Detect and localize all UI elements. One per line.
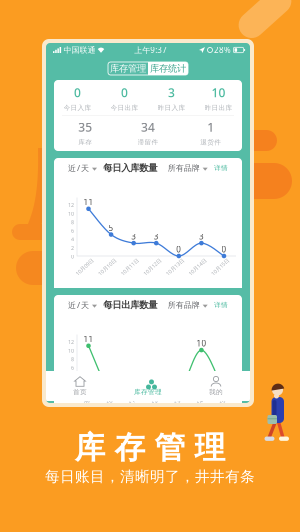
staticText: 10月11日 xyxy=(119,263,141,271)
button[interactable]: 我的 xyxy=(182,371,250,401)
staticText: 库存管理 xyxy=(110,63,146,74)
staticText: 0 xyxy=(176,244,181,255)
staticText: 上午9:37 xyxy=(134,45,167,55)
staticText: 10月12日 xyxy=(141,263,163,271)
button[interactable]: 库存管理 xyxy=(114,371,182,401)
staticText: 10月14日 xyxy=(186,400,208,408)
staticText: 库存管理 xyxy=(134,388,162,396)
staticText: 0 xyxy=(221,244,226,255)
staticText: 10 xyxy=(68,210,74,217)
staticText: 今日出库 xyxy=(110,104,138,112)
staticText: 12 xyxy=(68,338,74,346)
staticText: 6 xyxy=(71,227,74,234)
staticText: 10月12日 xyxy=(141,400,163,408)
staticText: 近7天 xyxy=(68,163,89,173)
staticText: 0 xyxy=(74,85,81,100)
staticText: 0 xyxy=(71,253,74,260)
staticText: 0 xyxy=(71,390,74,397)
staticText: 10月09日 xyxy=(73,400,95,408)
staticText: 3 xyxy=(199,231,204,242)
staticText: 3 xyxy=(154,231,159,242)
staticText: 3 xyxy=(131,231,136,242)
staticText: 34 xyxy=(141,119,155,135)
staticText: 库存 xyxy=(78,138,92,146)
staticText: 库 存 管 理 xyxy=(74,429,225,467)
button[interactable]: 首页 xyxy=(46,371,114,401)
staticText: 退货件 xyxy=(200,138,221,146)
staticText: 库存统计 xyxy=(150,63,186,74)
staticText: 10月13日 xyxy=(164,263,186,271)
staticText: 12 xyxy=(68,201,74,209)
staticText: 11 xyxy=(83,197,93,207)
staticText: 2 xyxy=(71,381,74,388)
staticText: 10 xyxy=(211,85,225,100)
staticText: 10月10日 xyxy=(96,263,118,271)
staticText: 每日出库数量 xyxy=(103,299,157,311)
staticText: 详情 xyxy=(214,301,228,309)
staticText: 我的 xyxy=(209,388,223,396)
button[interactable]: 库存管理 xyxy=(108,62,148,75)
staticText: 10月14日 xyxy=(186,263,208,271)
staticText: 10月09日 xyxy=(73,263,95,271)
staticText: 10月15日 xyxy=(209,263,231,271)
staticText: 滞留件 xyxy=(137,138,158,146)
staticText: 0 xyxy=(154,381,159,392)
staticText: 10月13日 xyxy=(164,400,186,408)
staticText: 3 xyxy=(168,85,175,100)
staticText: 中国联通 xyxy=(61,45,95,55)
staticText: 昨日入库 xyxy=(157,104,185,112)
staticText: 10月10日 xyxy=(96,400,118,408)
staticText: 每日入库数量 xyxy=(103,162,157,174)
staticText: 昨日出库 xyxy=(204,104,232,112)
staticText: 5 xyxy=(109,222,114,233)
staticText: 6 xyxy=(71,364,74,371)
staticText: 10月15日 xyxy=(209,400,231,408)
staticText: 8 xyxy=(71,356,74,363)
staticText: 8 xyxy=(71,219,74,226)
staticText: 4 xyxy=(71,236,74,243)
staticText: 今日入库 xyxy=(63,104,91,112)
staticText: 1 xyxy=(207,119,214,135)
staticText: 2 xyxy=(71,244,74,251)
staticText: 0 xyxy=(121,85,128,100)
staticText: 每日账目，清晰明了，井井有条 xyxy=(45,468,255,486)
staticText: 所有品牌 xyxy=(168,163,200,173)
button[interactable]: 库存统计 xyxy=(148,62,188,75)
staticText: 11 xyxy=(83,334,93,344)
staticText: 10 xyxy=(68,347,74,354)
staticText: 近7天 xyxy=(68,300,89,310)
staticText: 10月11日 xyxy=(119,400,141,408)
staticText: 0 xyxy=(131,381,136,392)
staticText: 首页 xyxy=(73,388,87,396)
staticText: 10 xyxy=(196,338,206,349)
staticText: 所有品牌 xyxy=(168,300,200,310)
staticText: 35 xyxy=(78,119,92,135)
staticText: 详情 xyxy=(214,164,228,172)
staticText: 28% xyxy=(210,45,231,55)
